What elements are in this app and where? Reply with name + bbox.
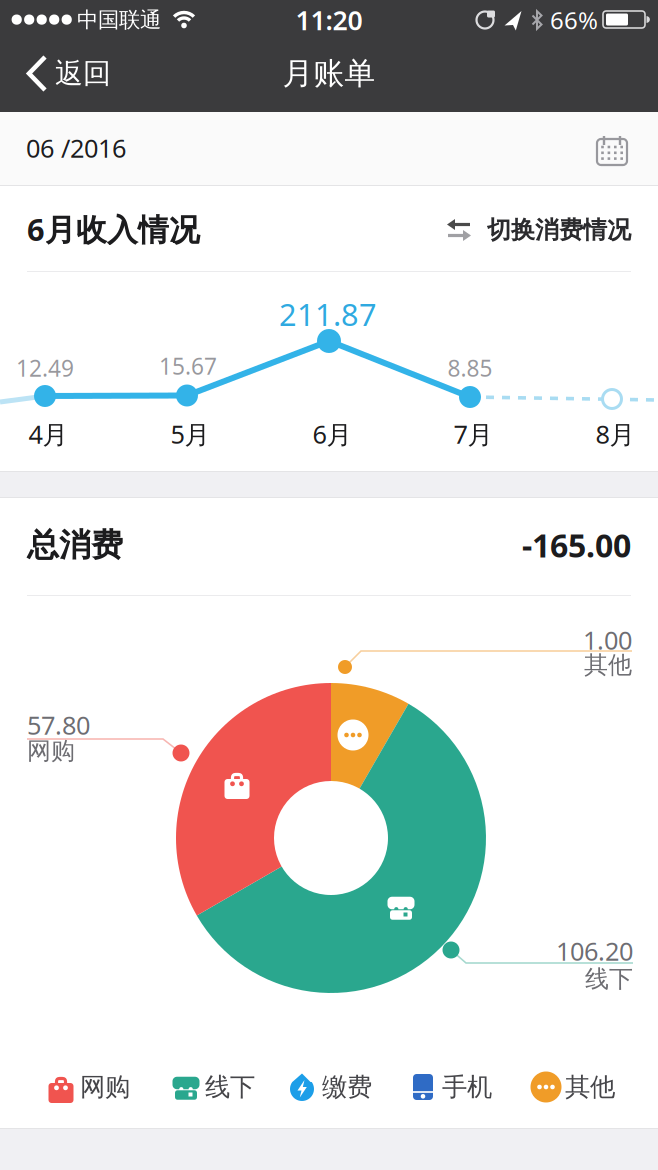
staticText: 1.00: [583, 623, 632, 657]
staticText: 106.20: [556, 934, 633, 968]
staticText: 12.49: [16, 353, 74, 383]
staticText: 5月: [170, 417, 209, 451]
button[interactable]: 06 /2016: [0, 112, 658, 186]
staticText: 15.67: [159, 351, 217, 381]
staticText: 8月: [595, 417, 634, 451]
staticText: 6月: [312, 417, 351, 451]
staticText: 切换消费情况: [487, 215, 631, 245]
staticText: 总消费: [27, 525, 123, 565]
staticText: -165.00: [522, 524, 631, 566]
staticText: 57.80: [27, 708, 90, 742]
staticText: 线下: [205, 1071, 255, 1102]
staticText: 中国联通: [77, 7, 161, 33]
staticText: 网购: [80, 1071, 130, 1102]
staticText: 6月收入情况: [27, 209, 200, 249]
staticText: 4月: [28, 417, 67, 451]
staticText: 缴费: [322, 1071, 372, 1102]
button[interactable]: 切换消费情况: [437, 210, 637, 260]
staticText: 8.85: [447, 353, 492, 383]
staticText: 手机: [442, 1071, 492, 1102]
staticText: 11:20: [295, 2, 362, 38]
staticText: 月账单: [282, 55, 375, 92]
staticText: 其他: [584, 650, 632, 680]
staticText: 网购: [27, 736, 75, 766]
staticText: 其他: [565, 1071, 615, 1102]
staticText: 返回: [55, 56, 111, 91]
staticText: 06 /2016: [26, 131, 126, 165]
staticText: 211.87: [279, 294, 377, 334]
staticText: 7月: [453, 417, 492, 451]
button[interactable]: 返回: [0, 40, 125, 107]
staticText: 66%: [550, 4, 598, 36]
staticText: 线下: [585, 964, 633, 994]
